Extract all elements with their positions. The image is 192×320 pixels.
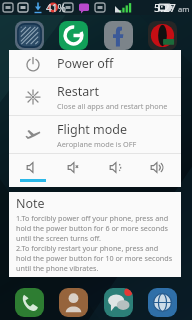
button[interactable]: Facebook [104, 21, 133, 50]
button[interactable]: Shortcut [15, 21, 44, 50]
staticText: Close all apps and restart phone [57, 101, 168, 111]
staticText: Power off [57, 55, 114, 72]
button[interactable]: Silent [15, 154, 51, 187]
button[interactable]: Contacts [59, 288, 88, 317]
button[interactable]: Vibrate [98, 154, 134, 187]
button[interactable]: Opera Mini [148, 21, 177, 50]
staticText: 5:27 [154, 0, 176, 15]
button[interactable]: Restart [9, 78, 181, 115]
staticText: 1.To forcibly power off your phone, pres… [16, 213, 175, 273]
button[interactable]: Messages [104, 288, 133, 317]
staticText: Restart [57, 83, 100, 100]
staticText: 41% [46, 1, 66, 15]
button[interactable]: Phone [15, 288, 44, 317]
button[interactable]: Power off [9, 50, 181, 77]
button[interactable]: Sound on [139, 154, 175, 187]
button[interactable]: Flight mode [9, 116, 181, 153]
button[interactable]: Grammarly [59, 21, 88, 50]
staticText: Flight mode [57, 121, 128, 138]
staticText: Aeroplane mode is OFF [57, 139, 137, 149]
button[interactable]: Browser [148, 288, 177, 317]
staticText: am [178, 4, 190, 14]
staticText: Note [16, 195, 45, 212]
button[interactable]: Mute [56, 154, 92, 187]
